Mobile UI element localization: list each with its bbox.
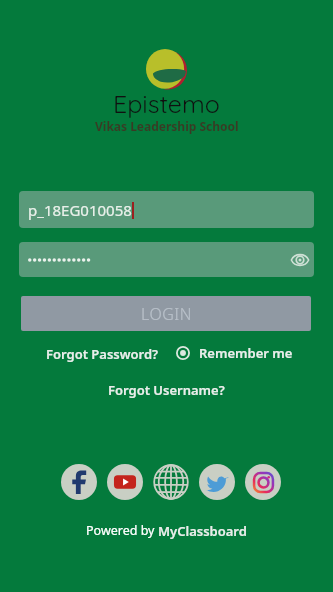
button[interactable]: p_18EG010058 [19, 191, 314, 228]
button[interactable]: Show password [291, 251, 309, 269]
staticText: LOGIN [141, 303, 192, 325]
button[interactable]: Forgot Password? [46, 345, 159, 363]
staticText: Epistemo [113, 88, 220, 119]
staticText: p_18EG010058 [28, 200, 132, 220]
staticText: Vikas Leadership School [95, 118, 239, 134]
button[interactable]: Website [153, 464, 189, 500]
staticText: MyClassboard [158, 522, 247, 540]
staticText: Forgot Username? [108, 381, 225, 399]
staticText: Powered by [86, 522, 158, 539]
button[interactable]: YouTube [107, 464, 143, 500]
button[interactable]: LOGIN [21, 296, 311, 331]
staticText: Forgot Password? [46, 345, 159, 363]
button[interactable]: Forgot Username? [108, 381, 225, 399]
button[interactable]: Show password [19, 242, 314, 277]
button[interactable]: Remember me [176, 344, 293, 362]
staticText: Remember me [199, 344, 293, 362]
button[interactable]: Instagram [245, 464, 281, 500]
button[interactable]: Facebook [61, 464, 97, 500]
button[interactable]: Twitter [199, 464, 235, 500]
